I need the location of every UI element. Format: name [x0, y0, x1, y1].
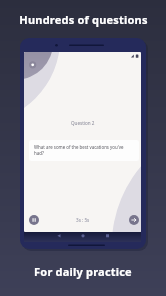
- button[interactable]: Pause: [29, 215, 39, 225]
- staticText: Hundreds of questions: [19, 12, 148, 27]
- staticText: For daily practice: [34, 264, 132, 279]
- staticText: What are some of the best vacations you'…: [34, 144, 134, 157]
- button[interactable]: What are some of the best vacations you'…: [29, 140, 139, 161]
- staticText: 3s : 5s: [76, 217, 90, 223]
- staticText: Question 2: [71, 120, 95, 126]
- button[interactable]: Next question: [129, 215, 139, 225]
